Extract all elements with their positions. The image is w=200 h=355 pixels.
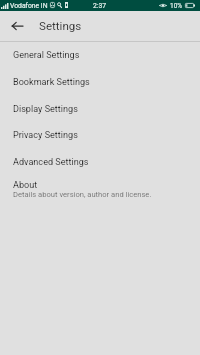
staticText: 2:37: [93, 2, 107, 10]
staticText: Display Settings: [13, 104, 78, 115]
staticText: Settings: [39, 19, 82, 33]
button[interactable]: About: [0, 174, 200, 206]
staticText: About: [13, 180, 38, 191]
staticText: 10%: [170, 2, 183, 10]
button[interactable]: Bookmark Settings: [0, 69, 200, 96]
button[interactable]: Back: [4, 11, 30, 41]
button[interactable]: Display Settings: [0, 96, 200, 123]
staticText: Privacy Settings: [13, 130, 78, 141]
button[interactable]: Advanced Settings: [0, 149, 200, 176]
staticText: Details about version, author and licens…: [13, 190, 152, 199]
staticText: General Settings: [13, 50, 80, 61]
staticText: Vodafone IN: [10, 2, 48, 10]
button[interactable]: Privacy Settings: [0, 122, 200, 149]
staticText: Bookmark Settings: [13, 77, 90, 88]
staticText: Advanced Settings: [13, 157, 89, 168]
button[interactable]: General Settings: [0, 42, 200, 69]
